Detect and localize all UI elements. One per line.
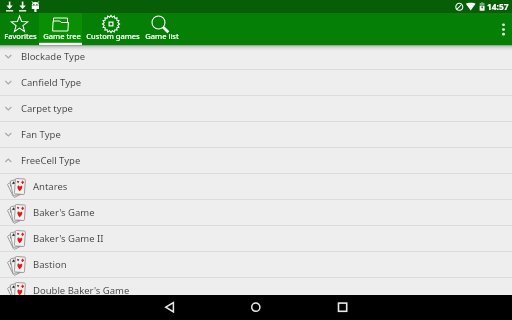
staticText: Favorites (4, 31, 37, 41)
button[interactable]: Game list (142, 13, 182, 45)
staticText: Bastion (33, 258, 67, 271)
staticText: Canfield Type (21, 76, 82, 89)
button[interactable]: Back (145, 295, 195, 320)
button[interactable]: Favorites (0, 13, 40, 45)
staticText: Game tree (43, 31, 81, 41)
button[interactable] (39, 13, 82, 45)
button[interactable]: Carpet type (0, 96, 512, 122)
staticText: FreeCell Type (21, 154, 81, 167)
staticText: Custom games (86, 31, 140, 41)
button[interactable]: Bastion (0, 252, 512, 278)
button[interactable]: Baker's Game II (0, 226, 512, 252)
button[interactable]: Antares (0, 174, 512, 200)
button[interactable]: Canfield Type (0, 70, 512, 96)
staticText: Double Baker's Game (33, 284, 130, 297)
staticText: Carpet type (21, 102, 73, 115)
staticText: Fan Type (21, 128, 61, 141)
staticText: Blockade Type (21, 50, 86, 63)
button[interactable]: Game tree (40, 13, 83, 45)
button[interactable]: Custom games (83, 13, 142, 45)
staticText: Antares (33, 180, 68, 193)
staticText: Baker's Game II (33, 232, 104, 245)
button[interactable]: Baker's Game (0, 200, 512, 226)
staticText: Baker's Game (33, 206, 95, 219)
button[interactable]: Blockade Type (0, 44, 512, 70)
button[interactable]: FreeCell Type (0, 148, 512, 174)
button[interactable]: Fan Type (0, 122, 512, 148)
staticText: 14:57 (487, 1, 509, 12)
button[interactable]: Recents (318, 295, 368, 320)
button[interactable]: Double Baker's Game (0, 278, 512, 304)
staticText: Game list (145, 31, 179, 41)
button[interactable]: Home (231, 295, 281, 320)
